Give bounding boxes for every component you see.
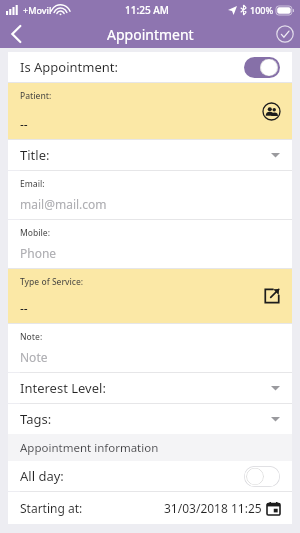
- staticText: Note: [20, 349, 48, 365]
- staticText: 11:25 AM: [125, 3, 169, 17]
- staticText: 31/03/2018 11:25: [164, 500, 262, 516]
- button[interactable]: Tags:: [8, 404, 292, 434]
- button[interactable]: Interest Level:: [8, 373, 292, 403]
- staticText: Mobile:: [20, 227, 51, 239]
- staticText: Starting at:: [20, 500, 83, 516]
- staticText: --: [20, 300, 28, 316]
- staticText: Phone: [20, 245, 57, 261]
- button[interactable]: Starting at:: [8, 492, 292, 524]
- staticText: Email:: [20, 178, 45, 190]
- staticText: Interest Level:: [20, 379, 106, 397]
- button[interactable]: Back: [0, 20, 32, 48]
- staticText: Appointment information: [20, 440, 159, 456]
- staticText: mail@mail.com: [20, 196, 107, 212]
- staticText: Note:: [20, 331, 43, 343]
- staticText: +Movil: [23, 4, 52, 16]
- staticText: Title:: [20, 146, 50, 164]
- staticText: Is Appointment:: [20, 58, 118, 76]
- button[interactable]: Mobile:: [8, 220, 292, 268]
- staticText: Tags:: [20, 410, 52, 428]
- button[interactable]: Is Appointment:: [8, 52, 292, 82]
- staticText: --: [20, 116, 28, 132]
- staticText: All day:: [20, 467, 64, 485]
- button[interactable]: Note:: [8, 324, 292, 372]
- button[interactable]: Email:: [8, 171, 292, 219]
- staticText: Type of Service:: [20, 276, 84, 288]
- staticText: Patient:: [20, 90, 52, 102]
- other: Pick date: [267, 502, 280, 515]
- button[interactable]: Patient:: [8, 83, 292, 139]
- button[interactable]: Title:: [8, 140, 292, 170]
- button[interactable]: Select patient: [263, 103, 280, 120]
- button[interactable]: Type of Service:: [8, 269, 292, 323]
- button[interactable]: Save: [270, 20, 300, 48]
- button[interactable]: Open type of service: [264, 288, 280, 304]
- staticText: 100%: [250, 4, 274, 16]
- button[interactable]: All day:: [8, 461, 292, 491]
- staticText: Appointment: [107, 25, 194, 44]
